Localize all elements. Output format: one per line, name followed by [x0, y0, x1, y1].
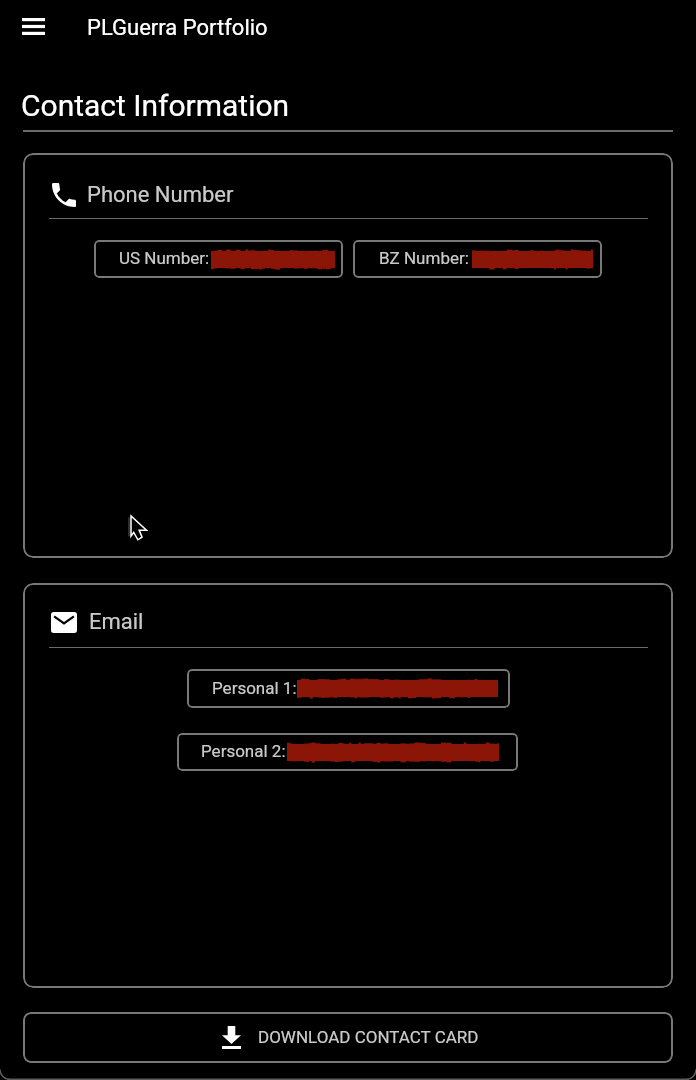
staticText: DOWNLOAD CONTACT CARD: [258, 1027, 479, 1047]
button[interactable]: Personal 2:: [177, 733, 518, 771]
staticText: Contact Information: [21, 88, 290, 123]
staticText: US Number:: [119, 248, 210, 268]
staticText: Personal 1:: [212, 678, 297, 698]
staticText: Email: [89, 609, 144, 635]
staticText: BZ Number:: [379, 248, 469, 268]
button[interactable]: BZ Number:: [353, 240, 602, 278]
staticText: PLGuerra Portfolio: [87, 15, 268, 41]
button[interactable]: Personal 1:: [187, 669, 510, 708]
button[interactable]: Menu: [10, 4, 55, 49]
button[interactable]: DOWNLOAD CONTACT CARD: [23, 1012, 673, 1063]
staticText: Personal 2:: [201, 741, 286, 761]
button[interactable]: US Number:: [94, 240, 343, 278]
staticText: Phone Number: [87, 182, 234, 208]
